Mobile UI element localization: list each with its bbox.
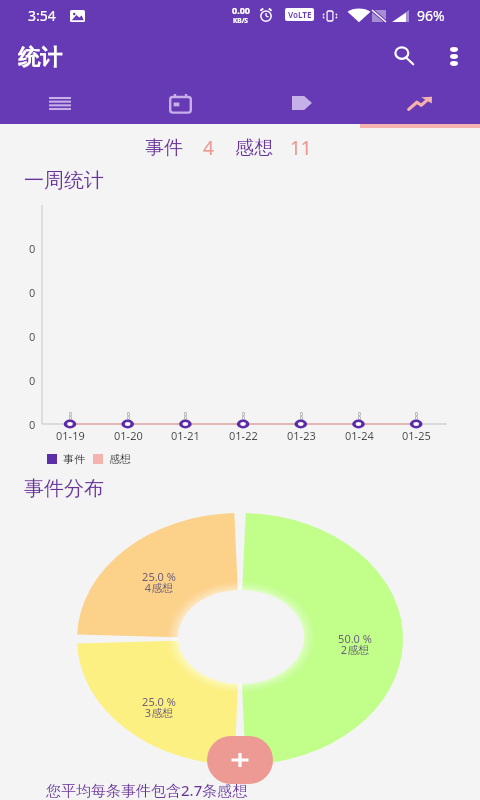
staticText: 事件分布 <box>24 476 104 501</box>
staticText: 01-22 <box>229 428 258 443</box>
button[interactable]: Add <box>207 736 273 784</box>
button[interactable]: Search <box>382 30 426 82</box>
staticText: 0 0 <box>184 411 187 422</box>
staticText: 统计 <box>18 44 62 72</box>
staticText: 01-24 <box>345 428 374 443</box>
staticText: 一周统计 <box>24 168 104 193</box>
button[interactable]: Tags <box>240 82 360 124</box>
staticText: 事件 <box>145 136 183 160</box>
button[interactable]: List <box>0 82 120 124</box>
staticText: 01-19 <box>56 428 85 443</box>
staticText: 01-21 <box>171 428 200 443</box>
staticText: 11 <box>290 135 312 161</box>
button[interactable]: More options <box>436 30 472 82</box>
staticText: 50.0 % 2感想 <box>338 631 372 657</box>
staticText: 4 <box>203 135 214 161</box>
staticText: 感想 <box>235 136 273 160</box>
staticText: 0.00 <box>232 4 250 16</box>
staticText: 0 0 <box>358 411 361 422</box>
staticText: 您平均每条事件包含2.7条感想 <box>46 780 248 800</box>
staticText: 0 <box>29 373 36 388</box>
staticText: 25.0 % 4感想 <box>142 569 176 595</box>
staticText: 0 <box>29 417 36 432</box>
staticText: 感想 <box>109 452 131 466</box>
staticText: 0 0 <box>242 411 245 422</box>
staticText: 0 0 <box>69 411 72 422</box>
staticText: 3:54 <box>28 6 56 25</box>
staticText: 0 <box>29 241 36 256</box>
staticText: 01-25 <box>402 428 431 443</box>
button[interactable]: Calendar <box>120 82 240 124</box>
staticText: 事件 <box>63 452 85 466</box>
staticText: 0 <box>29 285 36 300</box>
staticText: 01-20 <box>114 428 143 443</box>
staticText: VoLTE <box>288 9 312 20</box>
staticText: 25.0 % 3感想 <box>142 694 176 720</box>
staticText: 0 0 <box>127 411 130 422</box>
staticText: 0 0 <box>300 411 303 422</box>
staticText: 0 <box>29 329 36 344</box>
staticText: 96% <box>417 6 445 25</box>
staticText: 01-23 <box>287 428 316 443</box>
button[interactable]: Statistics <box>360 82 480 124</box>
staticText: 0 0 <box>415 411 418 422</box>
staticText: KB/S <box>233 16 248 25</box>
